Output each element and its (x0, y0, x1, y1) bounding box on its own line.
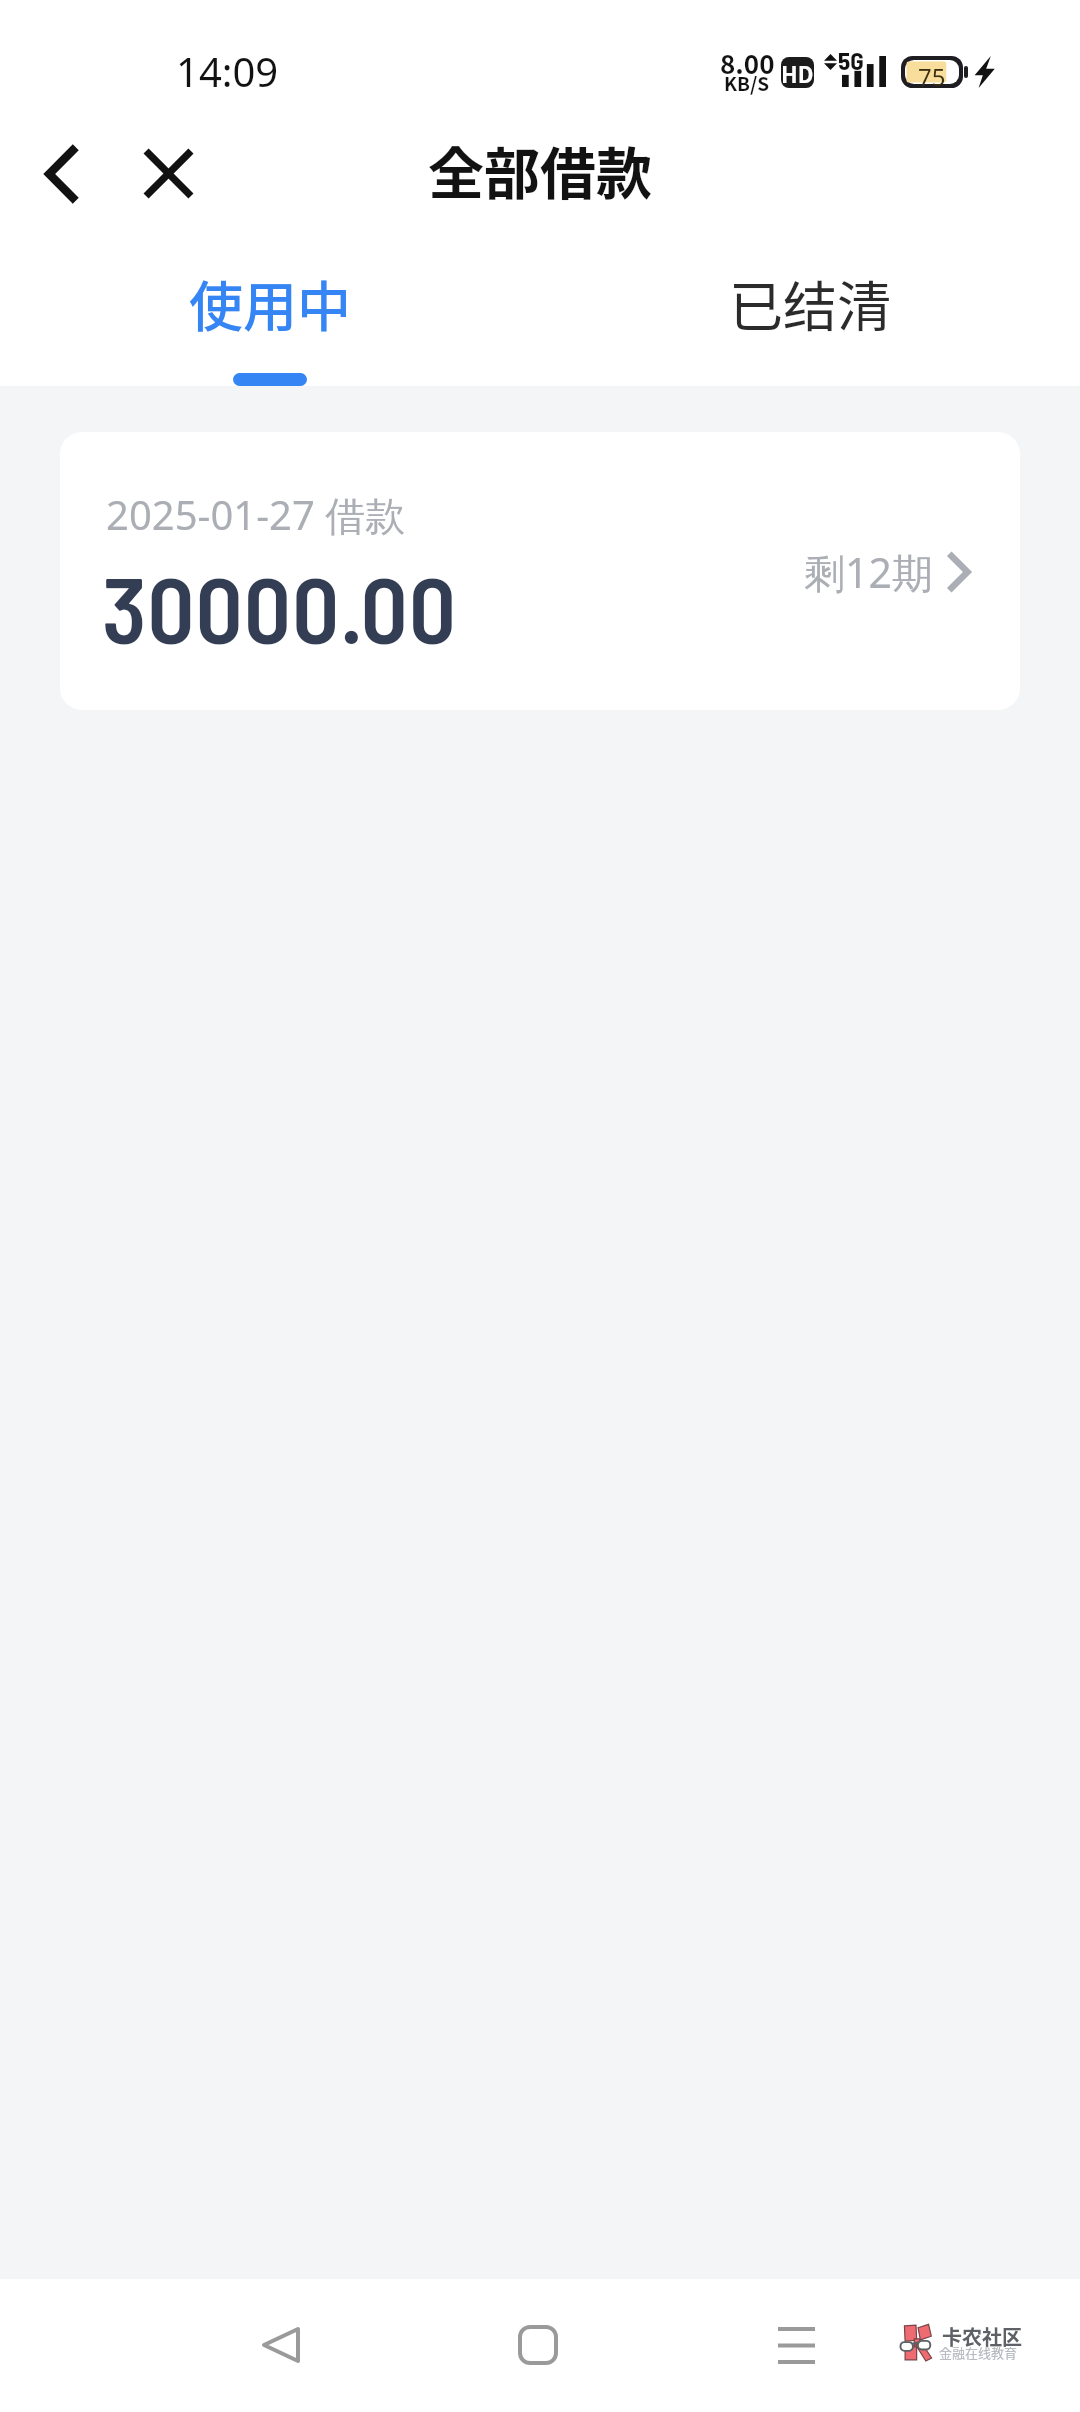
staticText: 8.00 (720, 44, 775, 82)
button[interactable]: Close (113, 118, 223, 228)
button[interactable]: 使用中 (0, 240, 540, 386)
staticText: 卡农社区 (942, 2322, 1022, 2351)
staticText: 30000.00 (102, 551, 458, 663)
staticText: 已结清 (729, 264, 891, 342)
staticText: 5G (838, 45, 864, 75)
staticText: 75 (918, 60, 946, 92)
staticText: 剩12期 (804, 544, 933, 600)
staticText: 使用中 (189, 264, 351, 342)
button[interactable]: Back (6, 119, 116, 229)
staticText: 金融在线教育 (939, 2343, 1018, 2362)
button[interactable]: 已结清 (540, 240, 1080, 386)
staticText: 2025-01-27 借款 (106, 487, 406, 542)
button[interactable]: Recent apps (746, 2295, 846, 2395)
staticText: HD (781, 57, 814, 88)
staticText: 全部借款 (428, 129, 652, 210)
button[interactable]: Back (230, 2295, 330, 2395)
staticText: 14:09 (176, 44, 279, 98)
button[interactable]: 2025-01-27 借款 (60, 432, 1020, 710)
staticText: KB/S (724, 69, 770, 97)
button[interactable]: Home (488, 2295, 588, 2395)
